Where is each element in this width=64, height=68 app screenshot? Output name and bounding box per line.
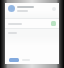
button[interactable]: [5, 29, 59, 36]
button[interactable]: Primary action: [9, 58, 19, 62]
button[interactable]: More options: [52, 7, 56, 11]
button[interactable]: [5, 19, 59, 28]
button[interactable]: Account avatar: [8, 5, 15, 12]
